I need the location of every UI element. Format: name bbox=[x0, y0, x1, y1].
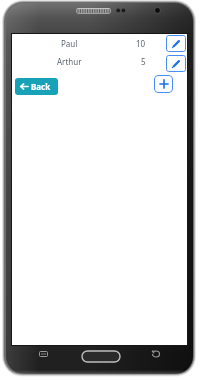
staticText: Back bbox=[31, 81, 51, 92]
staticText: 10 bbox=[136, 38, 146, 48]
staticText: 5 bbox=[141, 56, 146, 66]
staticText: Paul bbox=[61, 38, 78, 49]
button[interactable] bbox=[166, 35, 186, 52]
button[interactable] bbox=[154, 75, 173, 93]
button[interactable] bbox=[166, 55, 186, 72]
button[interactable]: Back bbox=[15, 78, 58, 95]
staticText: Arthur bbox=[57, 56, 82, 67]
